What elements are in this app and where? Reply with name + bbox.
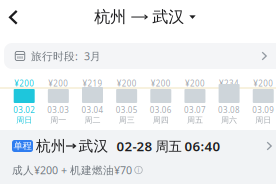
- button[interactable]: 杭州: [94, 0, 196, 34]
- button[interactable]: ¥234: [0, 0, 276, 184]
- staticText: 周日: [255, 115, 271, 125]
- staticText: 周二: [84, 115, 100, 125]
- staticText: 周一: [50, 115, 66, 125]
- staticText: i: [137, 166, 139, 174]
- staticText: 03.05: [116, 105, 138, 115]
- staticText: ¥200: [48, 78, 68, 89]
- staticText: 周四: [153, 115, 169, 125]
- staticText: 单程: [13, 140, 31, 152]
- staticText: 03.06: [150, 105, 172, 115]
- staticText: 武汉: [152, 7, 184, 27]
- button[interactable]: ¥200: [0, 0, 276, 184]
- staticText: 03.04: [81, 105, 103, 115]
- staticText: 周五: [187, 115, 203, 125]
- staticText: 03.09: [252, 105, 274, 115]
- staticText: 武汉: [78, 137, 108, 155]
- staticText: 旅行时段: 3月: [31, 49, 101, 63]
- staticText: ¥219: [82, 78, 102, 89]
- staticText: 周三: [119, 115, 135, 125]
- button[interactable]: ¥200: [0, 0, 276, 184]
- button[interactable]: ¥200: [0, 0, 276, 184]
- staticText: ¥200: [253, 78, 273, 89]
- staticText: 杭州: [36, 137, 66, 155]
- staticText: 周六: [221, 115, 237, 125]
- staticText: 02-28 周五 06:40: [116, 137, 220, 155]
- staticText: 03.08: [218, 105, 240, 115]
- staticText: 杭州: [94, 7, 126, 27]
- button[interactable]: ¥200: [0, 0, 276, 184]
- staticText: ¥200: [185, 78, 205, 89]
- staticText: 03.07: [184, 105, 206, 115]
- button[interactable]: ¥219: [0, 0, 276, 184]
- button[interactable]: 单程: [0, 133, 276, 159]
- staticText: ¥200: [14, 78, 34, 89]
- staticText: ¥200: [117, 78, 137, 89]
- button[interactable]: ¥200: [0, 0, 276, 184]
- staticText: ¥234: [219, 78, 239, 89]
- button[interactable]: 旅行时段: 3月: [4, 43, 276, 69]
- button[interactable]: ¥200: [0, 0, 276, 184]
- staticText: ¥200: [151, 78, 171, 89]
- staticText: 03.03: [47, 105, 69, 115]
- staticText: 成人¥200 + 机建燃油¥70: [12, 163, 132, 177]
- staticText: 03.02: [13, 105, 35, 115]
- button[interactable]: Back: [0, 0, 29, 37]
- staticText: 周日: [16, 115, 32, 125]
